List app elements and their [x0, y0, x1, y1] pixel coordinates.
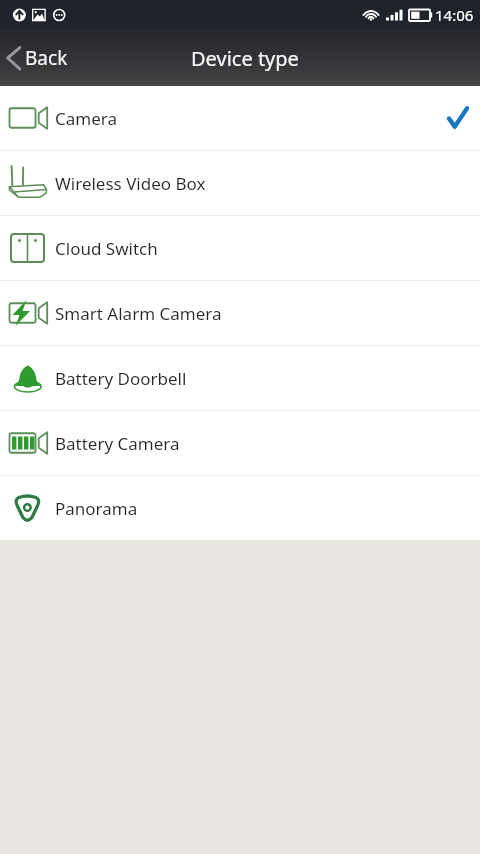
staticText: Battery Camera: [55, 432, 180, 455]
button[interactable]: Wireless Video Box: [0, 151, 480, 215]
staticText: Cloud Switch: [55, 237, 158, 260]
staticText: Back: [25, 45, 68, 71]
button[interactable]: Battery Doorbell: [0, 346, 480, 410]
button[interactable]: Camera: [0, 86, 480, 150]
staticText: Device type: [191, 45, 299, 72]
staticText: Battery Doorbell: [55, 367, 187, 390]
button[interactable]: Panorama: [0, 476, 480, 540]
button[interactable]: Back: [0, 45, 82, 71]
staticText: Smart Alarm Camera: [55, 302, 222, 325]
button[interactable]: Cloud Switch: [0, 216, 480, 280]
button[interactable]: Smart Alarm Camera: [0, 281, 480, 345]
staticText: Camera: [55, 107, 117, 130]
staticText: 14:06: [435, 5, 474, 25]
staticText: Panorama: [55, 497, 138, 520]
button[interactable]: Battery Camera: [0, 411, 480, 475]
staticText: Wireless Video Box: [55, 172, 206, 195]
